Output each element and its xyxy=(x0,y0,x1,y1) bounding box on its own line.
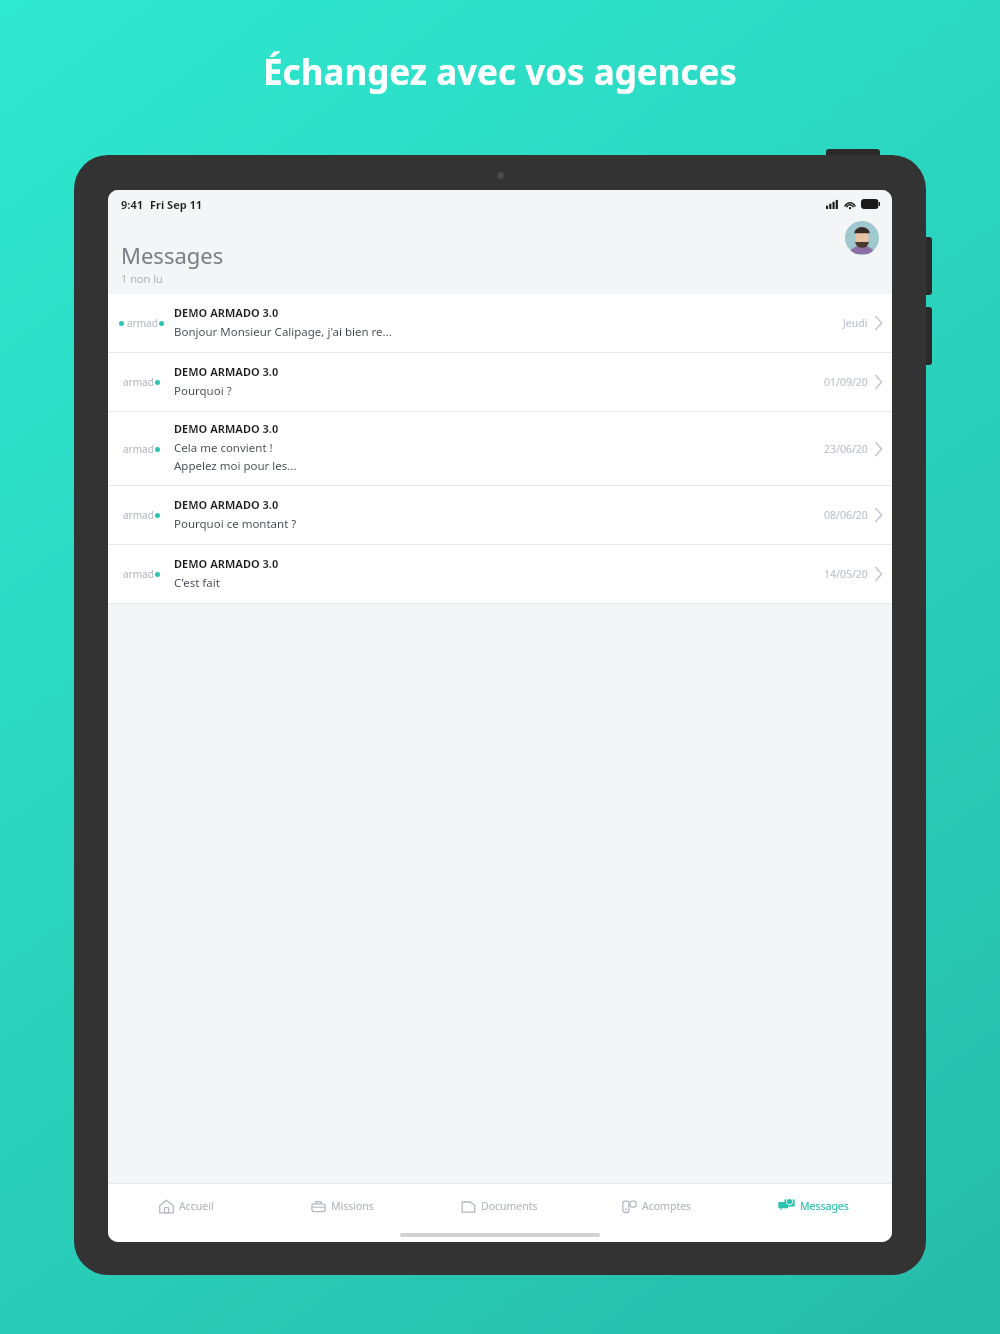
staticText: Missions xyxy=(331,1199,374,1213)
staticText: DEMO ARMADO 3.0 xyxy=(174,364,279,379)
staticText: Accueil xyxy=(179,1199,214,1213)
staticText: Pourquoi ce montant ? xyxy=(174,516,297,532)
staticText: 1 non lu xyxy=(121,271,163,286)
staticText: C'est fait xyxy=(174,575,220,591)
staticText: Acomptes xyxy=(642,1199,692,1213)
staticText: 23/06/20 xyxy=(824,442,868,456)
staticText: DEMO ARMADO 3.0 xyxy=(174,421,279,436)
staticText: Messages xyxy=(121,240,224,270)
staticText: DEMO ARMADO 3.0 xyxy=(174,556,279,571)
staticText: Appelez moi pour les... xyxy=(174,458,297,474)
button[interactable]: armad xyxy=(108,294,892,352)
staticText: Documents xyxy=(481,1199,538,1213)
button[interactable]: armad xyxy=(108,545,892,603)
staticText: Cela me convient ! xyxy=(174,440,273,456)
staticText: 01/09/20 xyxy=(824,375,868,389)
staticText: 9:41 xyxy=(121,197,143,212)
button[interactable]: Documents xyxy=(421,1184,578,1228)
staticText: 08/06/20 xyxy=(824,508,868,522)
staticText: 14/05/20 xyxy=(824,567,868,581)
staticText: armad xyxy=(123,567,154,581)
staticText: DEMO ARMADO 3.0 xyxy=(174,305,279,320)
staticText: armad xyxy=(123,375,154,389)
staticText: Bonjour Monsieur Calipage, j'ai bien re.… xyxy=(174,324,392,340)
button[interactable]: Messages xyxy=(735,1184,892,1228)
staticText: armad xyxy=(123,442,154,456)
staticText: Jeudi xyxy=(843,316,868,330)
staticText: Messages xyxy=(800,1199,849,1213)
button[interactable]: Acomptes xyxy=(578,1184,735,1228)
button[interactable]: Missions xyxy=(264,1184,421,1228)
button[interactable]: Accueil xyxy=(108,1184,264,1228)
staticText: Pourquoi ? xyxy=(174,383,232,399)
button[interactable]: armad xyxy=(108,412,892,485)
button[interactable]: armad xyxy=(108,353,892,411)
staticText: Échangez avec vos agences xyxy=(263,48,737,96)
button[interactable]: Profil xyxy=(845,221,879,255)
staticText: armad xyxy=(127,316,158,330)
staticText: armad xyxy=(123,508,154,522)
button[interactable]: armad xyxy=(108,486,892,544)
staticText: DEMO ARMADO 3.0 xyxy=(174,497,279,512)
staticText: Fri Sep 11 xyxy=(150,197,203,212)
